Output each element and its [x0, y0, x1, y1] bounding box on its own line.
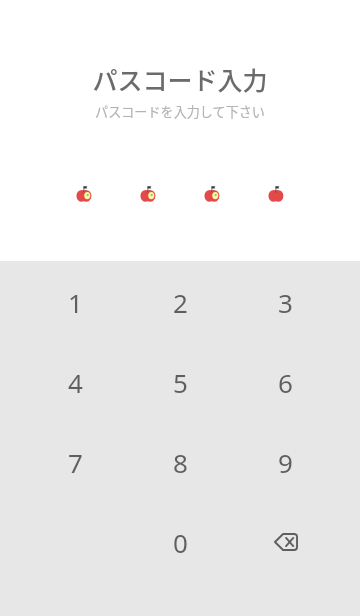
button[interactable]: 5 [128, 342, 233, 422]
button[interactable]: 8 [128, 422, 233, 502]
staticText: 3 [278, 285, 293, 320]
staticText: 5 [173, 365, 188, 400]
staticText: 9 [278, 445, 293, 480]
other: Backspace [274, 533, 298, 551]
staticText: パスコードを入力して下さい [95, 102, 265, 121]
button[interactable]: 7 [22, 422, 128, 502]
button[interactable]: 1 [22, 262, 128, 342]
button[interactable]: 2 [128, 262, 233, 342]
button[interactable]: 6 [233, 342, 338, 422]
staticText: 0 [173, 525, 188, 560]
button[interactable]: 3 [233, 262, 338, 342]
staticText: 1 [68, 285, 83, 320]
button[interactable]: Backspace [233, 502, 338, 582]
staticText: 7 [68, 445, 83, 480]
button[interactable]: 4 [22, 342, 128, 422]
staticText: 8 [173, 445, 188, 480]
staticText: パスコード入力 [92, 61, 268, 97]
staticText: 2 [173, 285, 188, 320]
staticText: 4 [68, 365, 83, 400]
button[interactable]: 0 [128, 502, 233, 582]
button[interactable]: 9 [233, 422, 338, 502]
staticText: 6 [278, 365, 293, 400]
